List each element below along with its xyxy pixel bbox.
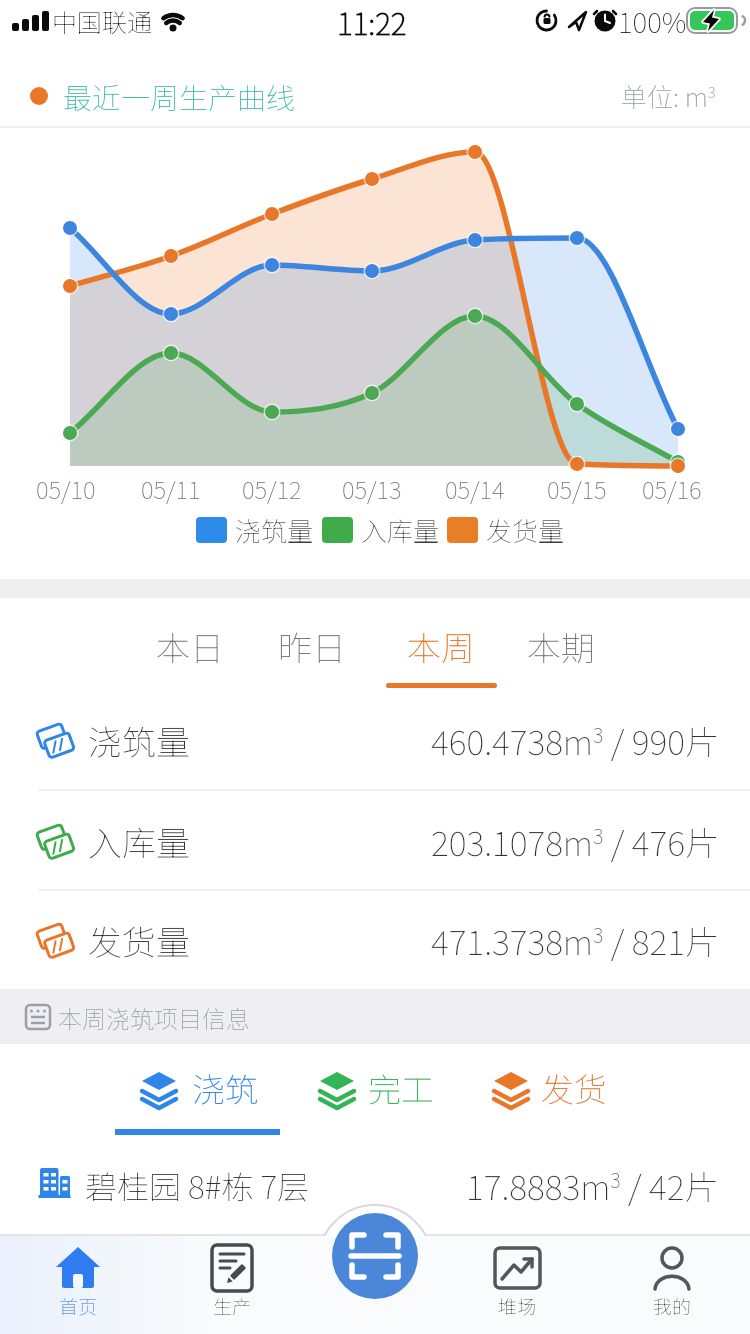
staticText: 471.3738m3 / 821片 xyxy=(431,916,719,965)
staticText: 本期 xyxy=(527,622,595,671)
button[interactable]: 堆场 xyxy=(457,1240,577,1332)
staticText: 100% xyxy=(618,1,687,42)
staticText: 首页 xyxy=(59,1292,98,1320)
staticText: 发货量 xyxy=(486,511,565,549)
staticText: 发货 xyxy=(541,1064,607,1112)
button[interactable]: 浇筑 xyxy=(132,1056,272,1120)
button[interactable]: 生产 xyxy=(172,1240,292,1332)
staticText: 05/15 xyxy=(547,471,607,506)
button[interactable]: 本周 xyxy=(386,614,496,678)
staticText: 05/10 xyxy=(36,471,96,506)
staticText: 本周浇筑项目信息 xyxy=(58,1000,250,1035)
staticText: 生产 xyxy=(213,1292,252,1320)
staticText: 11:22 xyxy=(337,0,407,43)
staticText: 05/16 xyxy=(642,471,702,506)
staticText: 堆场 xyxy=(498,1292,537,1320)
staticText: 浇筑量 xyxy=(235,511,314,549)
button[interactable]: 本日 xyxy=(135,614,245,678)
staticText: 完工 xyxy=(368,1064,434,1112)
button[interactable] xyxy=(332,1213,418,1299)
staticText: 浇筑量 xyxy=(88,716,190,765)
staticText: 05/11 xyxy=(141,471,201,506)
staticText: 发货量 xyxy=(88,916,190,965)
staticText: 203.1078m3 / 476片 xyxy=(431,817,719,866)
button[interactable]: 我的 xyxy=(612,1240,732,1332)
staticText: 本日 xyxy=(156,622,224,671)
staticText: 17.8883m3 / 42片 xyxy=(466,1161,719,1210)
staticText: 05/14 xyxy=(445,471,505,506)
staticText: 中国联通 xyxy=(52,3,153,39)
button[interactable]: 浇筑量 xyxy=(0,690,750,790)
staticText: 460.4738m3 / 990片 xyxy=(431,716,719,765)
staticText: 单位: m3 xyxy=(621,77,716,115)
button[interactable]: 发货 xyxy=(481,1056,621,1120)
button[interactable]: 昨日 xyxy=(257,614,367,678)
button[interactable]: 完工 xyxy=(308,1056,448,1120)
button[interactable]: 发货量 xyxy=(0,890,750,990)
staticText: 昨日 xyxy=(278,622,346,671)
staticText: 入库量 xyxy=(361,511,440,549)
staticText: 我的 xyxy=(653,1292,692,1320)
button[interactable]: 本期 xyxy=(506,614,616,678)
staticText: 05/13 xyxy=(342,471,402,506)
button[interactable]: 碧桂园 8#栋 7层 xyxy=(0,1145,750,1225)
staticText: 本周 xyxy=(407,622,475,671)
button[interactable]: 入库量 xyxy=(0,791,750,891)
button[interactable]: 首页 xyxy=(18,1240,138,1332)
staticText: 入库量 xyxy=(88,817,190,866)
staticText: 浇筑 xyxy=(192,1064,258,1112)
staticText: 05/12 xyxy=(242,471,302,506)
staticText: 最近一周生产曲线 xyxy=(63,75,296,117)
staticText: 碧桂园 8#栋 7层 xyxy=(85,1162,310,1208)
